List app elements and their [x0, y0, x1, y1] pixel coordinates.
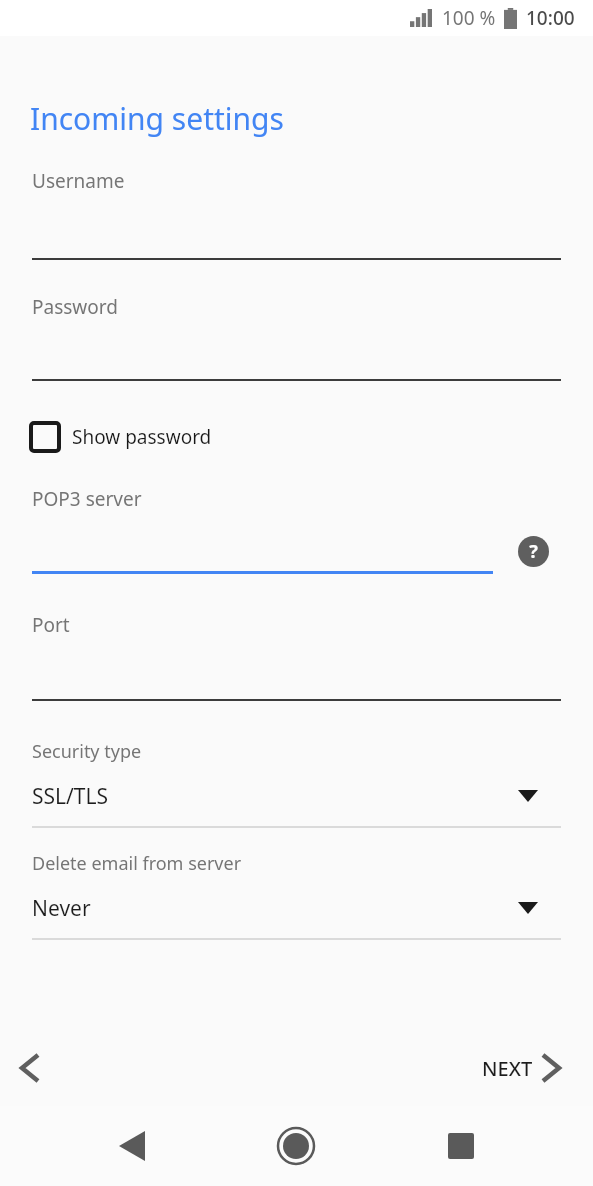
- staticText: Delete email from server: [32, 851, 242, 876]
- button[interactable]: Back: [4, 1042, 56, 1094]
- staticText: ?: [529, 539, 538, 564]
- button[interactable]: Back: [106, 1120, 158, 1172]
- staticText: Security type: [32, 739, 142, 764]
- button[interactable]: Recent apps: [435, 1120, 487, 1172]
- staticText: Show password: [72, 424, 212, 450]
- button[interactable]: Home: [270, 1120, 322, 1172]
- staticText: Port: [32, 612, 70, 638]
- staticText: Incoming settings: [30, 98, 284, 139]
- staticText: POP3 server: [32, 486, 142, 512]
- staticText: 10:00: [526, 5, 575, 31]
- button[interactable]: POP3 server: [32, 486, 493, 577]
- button[interactable]: Help: [518, 536, 549, 567]
- staticText: SSL/TLS: [32, 782, 109, 811]
- button[interactable]: Security type: [32, 739, 561, 830]
- staticText: 100 %: [442, 5, 496, 31]
- button[interactable]: Port: [32, 612, 561, 705]
- staticText: NEXT: [482, 1055, 533, 1082]
- staticText: Password: [32, 294, 118, 320]
- button[interactable]: Show password: [28, 416, 212, 458]
- button[interactable]: Delete email from server: [32, 851, 561, 942]
- staticText: Username: [32, 168, 125, 194]
- staticText: Never: [32, 894, 91, 923]
- button[interactable]: Password: [32, 294, 561, 385]
- button[interactable]: Username: [32, 168, 561, 264]
- button[interactable]: NEXT: [482, 1042, 559, 1094]
